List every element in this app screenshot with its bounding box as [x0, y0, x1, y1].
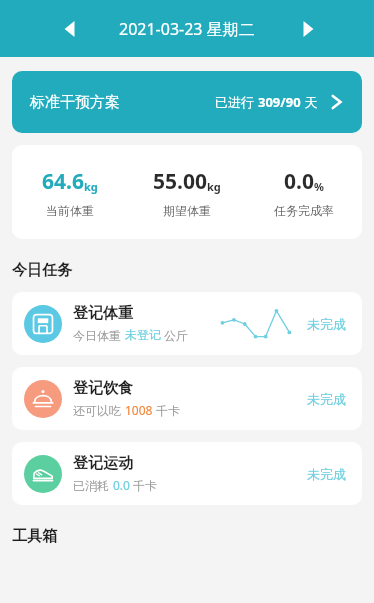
- button[interactable]: 登记体重: [12, 292, 362, 355]
- staticText: 未完成: [307, 391, 346, 407]
- staticText: 未完成: [307, 466, 346, 482]
- staticText: 309/90: [258, 93, 301, 111]
- button[interactable]: Next day: [286, 7, 330, 51]
- staticText: 还可以吃: [73, 402, 125, 418]
- staticText: 当前体重: [46, 203, 94, 218]
- staticText: 期望体重: [163, 203, 211, 218]
- staticText: 登记体重: [73, 304, 133, 323]
- staticText: 任务完成率: [274, 203, 334, 218]
- staticText: 今日体重: [73, 327, 125, 343]
- staticText: %: [314, 179, 324, 194]
- button[interactable]: Previous day: [48, 7, 92, 51]
- staticText: 64.6: [42, 167, 84, 196]
- staticText: 55.00: [153, 167, 207, 196]
- staticText: 标准干预方案: [30, 93, 120, 112]
- staticText: 0.0: [284, 167, 314, 196]
- staticText: 今日任务: [12, 261, 72, 280]
- staticText: kg: [84, 179, 98, 194]
- staticText: 千卡: [130, 477, 158, 493]
- staticText: 未完成: [307, 316, 346, 332]
- button[interactable]: 登记饮食: [12, 367, 362, 430]
- button[interactable]: 标准干预方案: [12, 71, 362, 133]
- staticText: 已消耗: [73, 477, 113, 493]
- staticText: 已进行: [215, 93, 258, 111]
- staticText: 1008: [125, 402, 153, 418]
- staticText: 0.0: [113, 477, 130, 493]
- staticText: 登记饮食: [73, 379, 133, 398]
- staticText: 工具箱: [12, 527, 57, 546]
- staticText: kg: [207, 179, 221, 194]
- staticText: 登记运动: [73, 454, 133, 473]
- button[interactable]: 登记运动: [12, 442, 362, 505]
- staticText: 天: [301, 93, 318, 111]
- staticText: 千卡: [153, 402, 181, 418]
- staticText: 2021-03-23 星期二: [119, 18, 255, 40]
- staticText: 公斤: [161, 327, 189, 343]
- staticText: 未登记: [125, 327, 161, 342]
